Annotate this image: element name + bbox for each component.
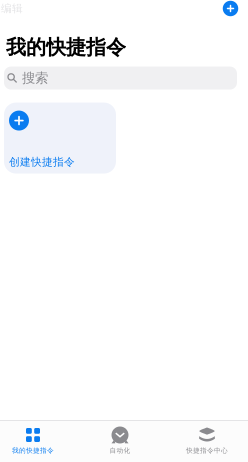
button[interactable]: 自动化 (87, 420, 153, 462)
button[interactable]: 新建快捷指令 (222, 0, 239, 17)
button[interactable]: 创建快捷指令 (4, 103, 116, 174)
staticText: 我的快捷指令 (12, 446, 54, 455)
staticText: 创建快捷指令 (9, 155, 75, 169)
staticText: 快捷指令中心 (186, 446, 228, 455)
staticText: 搜索 (22, 70, 48, 86)
staticText: 编辑 (1, 2, 23, 15)
button[interactable]: 快捷指令中心 (174, 420, 240, 462)
staticText: 我的快捷指令 (6, 35, 126, 60)
button[interactable]: 我的快捷指令 (0, 420, 66, 462)
staticText: 自动化 (109, 446, 130, 455)
button[interactable]: 搜索 (4, 67, 237, 90)
button[interactable]: 编辑 (0, 0, 26, 17)
